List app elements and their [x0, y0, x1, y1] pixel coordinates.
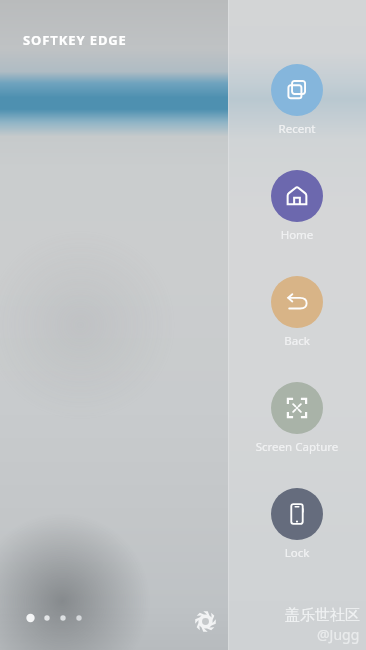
staticText: Home	[228, 227, 366, 243]
button[interactable]: Home	[228, 170, 366, 244]
staticText: 盖乐世社区	[285, 606, 360, 625]
staticText: Back	[228, 333, 366, 349]
staticText: @Jugg	[317, 625, 360, 644]
button[interactable]: Recent	[228, 64, 366, 138]
button[interactable]: Lock	[228, 488, 366, 562]
button[interactable]: Screen Capture	[228, 382, 366, 456]
button[interactable]: Back	[228, 276, 366, 350]
staticText: SOFTKEY EDGE	[23, 31, 127, 49]
staticText: Recent	[228, 121, 366, 137]
staticText: Screen Capture	[228, 439, 366, 455]
button[interactable]: Settings	[190, 606, 220, 636]
staticText: Lock	[228, 545, 366, 561]
